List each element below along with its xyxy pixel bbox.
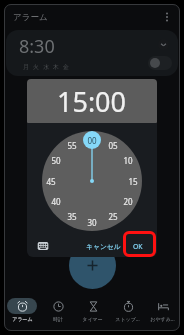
staticText: 40 — [51, 196, 61, 207]
staticText: おやすみ… — [150, 316, 175, 323]
staticText: 45 — [46, 176, 56, 187]
staticText: ストップ… — [115, 316, 140, 323]
staticText: 00 — [87, 135, 97, 146]
staticText: 05 — [108, 140, 118, 151]
button[interactable]: おやすみ… — [145, 289, 180, 331]
staticText: 8:30 — [19, 34, 55, 59]
staticText: アラーム — [12, 316, 33, 322]
staticText: 35 — [67, 211, 77, 222]
button[interactable]: タイマー — [75, 289, 110, 331]
staticText: 15:00 — [57, 83, 127, 120]
staticText: 30 — [87, 217, 97, 228]
staticText: 20 — [123, 196, 133, 207]
button[interactable]: キャンセル — [82, 237, 125, 255]
staticText: 25 — [108, 211, 118, 222]
staticText: アラーム — [13, 12, 48, 23]
staticText: キャンセル — [86, 242, 121, 251]
button[interactable]: Toggle alarm — [148, 56, 172, 70]
staticText: 水 — [43, 63, 49, 71]
staticText: OK — [133, 242, 143, 251]
staticText: 金 — [63, 63, 69, 71]
staticText: 15 — [128, 176, 138, 187]
button[interactable]: アラーム — [4, 289, 40, 331]
button[interactable]: Expand alarm — [158, 39, 169, 50]
staticText: 10 — [123, 155, 133, 166]
staticText: 55 — [67, 140, 77, 151]
button[interactable]: Switch to keyboard input — [36, 239, 50, 253]
button[interactable]: ストップ… — [110, 289, 145, 331]
button[interactable]: More options — [159, 9, 175, 25]
staticText: 50 — [51, 155, 61, 166]
button[interactable]: 8:30 — [6, 30, 178, 76]
button[interactable]: OK — [127, 237, 149, 255]
button[interactable]: 時計 — [40, 289, 75, 331]
staticText: 火 — [33, 63, 39, 71]
staticText: 月 — [23, 63, 29, 71]
staticText: 木 — [53, 63, 59, 71]
button[interactable]: Add alarm — [69, 242, 116, 289]
staticText: タイマー — [82, 316, 103, 322]
staticText: 時計 — [53, 316, 63, 322]
